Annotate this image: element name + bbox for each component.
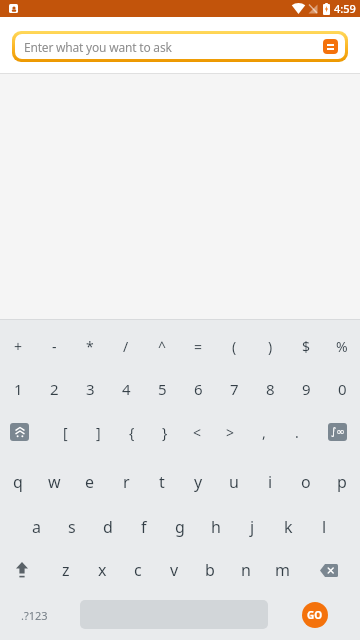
button[interactable]: a	[18, 510, 54, 544]
button[interactable]: j	[234, 510, 270, 544]
staticText: ∫∞	[331, 426, 345, 438]
button[interactable]: m	[264, 553, 300, 587]
staticText: h	[211, 516, 221, 538]
button[interactable]: o	[288, 465, 324, 499]
button[interactable]: 5	[144, 372, 180, 406]
button[interactable]: c	[120, 553, 156, 587]
button[interactable]: GO	[302, 602, 328, 628]
button[interactable]: )	[252, 329, 288, 363]
button[interactable]: =	[180, 329, 216, 363]
staticText: Enter what you want to ask	[24, 39, 172, 55]
staticText: GO	[307, 608, 323, 622]
button[interactable]	[10, 423, 29, 441]
button[interactable]: n	[228, 553, 264, 587]
button[interactable]: 9	[288, 372, 324, 406]
button[interactable]: +	[0, 329, 36, 363]
button[interactable]: s	[54, 510, 90, 544]
button[interactable]: /	[108, 329, 144, 363]
button[interactable]: f	[126, 510, 162, 544]
button[interactable]: l	[306, 510, 342, 544]
button[interactable]: 4	[108, 372, 144, 406]
staticText: *	[86, 337, 94, 356]
button[interactable]: <	[181, 415, 214, 449]
button[interactable]: .?123	[6, 601, 62, 629]
staticText: n	[241, 559, 251, 581]
button[interactable]: ^	[144, 329, 180, 363]
button[interactable]: v	[156, 553, 192, 587]
staticText: +	[14, 337, 23, 356]
button[interactable]: Enter what you want to ask	[12, 31, 348, 62]
staticText: y	[194, 471, 203, 493]
staticText: 2	[50, 379, 59, 399]
button[interactable]: [	[49, 415, 82, 449]
staticText: t	[159, 471, 165, 493]
button[interactable]: 3	[72, 372, 108, 406]
button[interactable]: $	[288, 329, 324, 363]
button[interactable]: .	[280, 415, 313, 449]
staticText: %	[336, 337, 348, 356]
staticText: m	[275, 559, 290, 581]
button[interactable]: {	[115, 415, 148, 449]
staticText: 3	[86, 379, 95, 399]
button[interactable]: r	[108, 465, 144, 499]
button[interactable]: w	[36, 465, 72, 499]
staticText: b	[205, 559, 215, 581]
button[interactable]: z	[48, 553, 84, 587]
button[interactable]: -	[36, 329, 72, 363]
staticText: (	[232, 337, 237, 356]
button[interactable]	[323, 39, 338, 54]
button[interactable]: %	[324, 329, 360, 363]
button[interactable]: t	[144, 465, 180, 499]
button[interactable]: 2	[36, 372, 72, 406]
staticText: c	[134, 559, 142, 581]
button[interactable]: 0	[324, 372, 360, 406]
button[interactable]: d	[90, 510, 126, 544]
button[interactable]	[305, 553, 353, 587]
staticText: ^	[158, 337, 167, 356]
staticText: ]	[96, 423, 101, 442]
button[interactable]: i	[252, 465, 288, 499]
staticText: a	[32, 516, 41, 538]
button[interactable]: ,	[247, 415, 280, 449]
staticText: }	[162, 423, 168, 442]
staticText: z	[62, 559, 70, 581]
button[interactable]: g	[162, 510, 198, 544]
staticText: .?123	[21, 608, 48, 623]
button[interactable]: 1	[0, 372, 36, 406]
button[interactable]: *	[72, 329, 108, 363]
staticText: 4	[122, 379, 131, 399]
button[interactable]: >	[214, 415, 247, 449]
staticText: r	[123, 471, 130, 493]
button[interactable]: p	[324, 465, 360, 499]
staticText: [	[63, 423, 68, 442]
button[interactable]: e	[72, 465, 108, 499]
button[interactable]: y	[180, 465, 216, 499]
button[interactable]: ]	[82, 415, 115, 449]
button[interactable]: (	[216, 329, 252, 363]
staticText: =	[194, 337, 203, 356]
staticText: 1	[14, 379, 23, 399]
staticText: 4:59	[334, 1, 356, 16]
button[interactable]	[0, 553, 46, 587]
staticText: 7	[230, 379, 239, 399]
staticText: >	[226, 423, 235, 442]
staticText: p	[337, 471, 347, 493]
button[interactable]: u	[216, 465, 252, 499]
staticText: 0	[338, 379, 347, 399]
staticText: d	[103, 516, 113, 538]
staticText: s	[68, 516, 76, 538]
button[interactable]: 6	[180, 372, 216, 406]
button[interactable]: }	[148, 415, 181, 449]
staticText: 8	[266, 379, 275, 399]
button[interactable]: x	[84, 553, 120, 587]
button[interactable]: k	[270, 510, 306, 544]
staticText: )	[268, 337, 273, 356]
button[interactable]: 7	[216, 372, 252, 406]
staticText: .	[295, 423, 299, 442]
button[interactable]: 8	[252, 372, 288, 406]
button[interactable]: ∫∞	[328, 423, 347, 441]
button[interactable]: h	[198, 510, 234, 544]
button[interactable]: b	[192, 553, 228, 587]
button[interactable]: q	[0, 465, 36, 499]
